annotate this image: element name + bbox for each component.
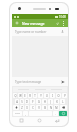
staticText: R bbox=[29, 94, 31, 98]
button[interactable]: F bbox=[30, 99, 35, 104]
button[interactable]: Y bbox=[38, 93, 43, 98]
button[interactable]: Contacts bbox=[60, 29, 65, 34]
button[interactable]: Type text message bbox=[12, 77, 68, 86]
button[interactable]: T bbox=[33, 93, 37, 98]
button[interactable]: Send bbox=[60, 79, 66, 85]
button[interactable]: W bbox=[18, 93, 22, 98]
button[interactable]: Back bbox=[53, 117, 60, 124]
staticText: U bbox=[46, 94, 48, 98]
staticText: E bbox=[24, 94, 26, 98]
staticText: , bbox=[25, 112, 26, 116]
button[interactable]: N bbox=[48, 105, 53, 110]
button[interactable]: Send message bbox=[59, 111, 67, 116]
staticText: K bbox=[56, 100, 58, 104]
staticText: G bbox=[38, 100, 40, 104]
button[interactable]: B bbox=[42, 105, 47, 110]
staticText: B bbox=[44, 106, 46, 110]
button[interactable]: , bbox=[23, 111, 28, 116]
staticText: X bbox=[26, 106, 28, 110]
button[interactable]: Attach bbox=[54, 20, 60, 26]
button[interactable]: L bbox=[60, 99, 65, 104]
button[interactable]: More options bbox=[61, 21, 66, 26]
button[interactable]: C bbox=[30, 105, 35, 110]
button[interactable]: O bbox=[56, 93, 61, 98]
staticText: Type name or number bbox=[15, 30, 47, 34]
staticText: ?123 bbox=[15, 112, 20, 115]
staticText: P bbox=[64, 94, 66, 98]
button[interactable]: Z bbox=[20, 105, 24, 110]
button[interactable]: New message bbox=[14, 20, 20, 26]
staticText: S bbox=[21, 100, 23, 104]
button[interactable]: M bbox=[54, 105, 59, 110]
button[interactable]: Shift bbox=[13, 105, 19, 110]
staticText: New message bbox=[22, 21, 45, 26]
button[interactable]: H bbox=[42, 99, 47, 104]
staticText: I bbox=[52, 94, 53, 98]
staticText: O bbox=[57, 94, 60, 98]
staticText: H bbox=[44, 100, 46, 104]
staticText: V bbox=[38, 106, 40, 110]
staticText: Y bbox=[40, 94, 42, 98]
button[interactable]: G bbox=[36, 99, 41, 104]
button[interactable]: X bbox=[25, 105, 29, 110]
button[interactable]: Home bbox=[36, 117, 43, 124]
staticText: . bbox=[55, 112, 56, 116]
staticText: N bbox=[50, 106, 52, 110]
button[interactable]: D bbox=[25, 99, 29, 104]
staticText: Z bbox=[21, 106, 23, 110]
staticText: F bbox=[32, 100, 34, 104]
button[interactable]: E bbox=[23, 93, 27, 98]
button[interactable]: I bbox=[50, 93, 55, 98]
button[interactable]: J bbox=[48, 99, 53, 104]
button[interactable]: Type name or number bbox=[12, 27, 68, 36]
staticText: M bbox=[55, 106, 58, 110]
staticText: C bbox=[32, 106, 34, 110]
button[interactable]: P bbox=[62, 93, 67, 98]
button[interactable]: K bbox=[54, 99, 59, 104]
button[interactable]: U bbox=[44, 93, 49, 98]
button[interactable]: ?123 bbox=[13, 111, 22, 116]
button[interactable]: V bbox=[36, 105, 41, 110]
button[interactable] bbox=[13, 87, 67, 92]
button[interactable]: A bbox=[15, 99, 19, 104]
button[interactable]: . bbox=[53, 111, 58, 116]
staticText: T bbox=[34, 94, 36, 98]
staticText: L bbox=[62, 100, 64, 104]
staticText: W bbox=[19, 94, 22, 98]
staticText: A bbox=[16, 100, 18, 104]
staticText: Q bbox=[14, 94, 17, 98]
staticText: 10:08 bbox=[59, 15, 66, 19]
button[interactable]: Q bbox=[13, 93, 17, 98]
button[interactable]: Backspace bbox=[60, 105, 67, 110]
button[interactable]: S bbox=[20, 99, 24, 104]
staticText: D bbox=[26, 100, 28, 104]
staticText: Type text message bbox=[15, 80, 42, 84]
button[interactable]: R bbox=[28, 93, 32, 98]
button[interactable]: Recent apps bbox=[18, 117, 25, 124]
